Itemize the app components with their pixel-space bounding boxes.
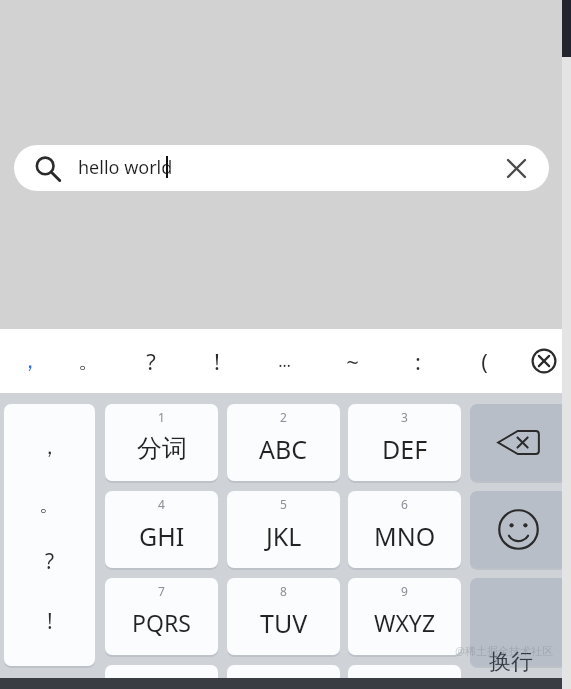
button[interactable]: ， (4, 404, 95, 666)
staticText: GHI (139, 519, 185, 553)
button[interactable]: 1 (105, 404, 218, 481)
staticText: ? (45, 547, 55, 576)
staticText: ! (214, 346, 220, 376)
staticText: 7 (158, 583, 165, 599)
staticText: ( (481, 346, 488, 376)
staticText: ? (146, 346, 156, 376)
staticText: 分词 (137, 433, 187, 464)
button[interactable]: 7 (105, 578, 218, 655)
button[interactable]: 8 (227, 578, 340, 655)
button[interactable]: Emoji (470, 491, 567, 568)
button[interactable]: ~ (319, 329, 385, 393)
button[interactable]: : (385, 329, 451, 393)
staticText: PQRS (132, 607, 191, 638)
staticText: 3 (401, 409, 408, 425)
button[interactable]: 3 (348, 404, 461, 481)
button[interactable]: Backspace (470, 404, 567, 481)
staticText: JKL (266, 519, 302, 553)
staticText: : (415, 346, 421, 376)
staticText: 2 (280, 409, 287, 425)
staticText: WXYZ (374, 607, 436, 638)
button[interactable]: Enter (470, 578, 567, 666)
staticText: hello world (78, 155, 173, 180)
button[interactable]: 6 (348, 491, 461, 568)
staticText: 6 (401, 496, 408, 512)
staticText: ， (39, 434, 60, 460)
button[interactable]: ， (0, 329, 59, 393)
staticText: 4 (158, 496, 165, 512)
button[interactable]: hello world (14, 145, 549, 191)
staticText: 5 (280, 496, 287, 512)
staticText: 换行 (489, 648, 533, 676)
staticText: 。 (39, 491, 60, 517)
button[interactable]: Clear text (499, 151, 533, 185)
button[interactable]: 。 (59, 329, 118, 393)
staticText: @稀土掘金技术社区 (455, 643, 553, 658)
staticText: 1 (158, 409, 165, 425)
button[interactable] (105, 665, 218, 689)
staticText: ~ (346, 346, 359, 376)
staticText: TUV (260, 606, 308, 640)
staticText: 。 (78, 347, 100, 375)
staticText: MNO (374, 519, 436, 553)
button[interactable] (348, 665, 461, 689)
staticText: … (278, 350, 291, 372)
staticText: 8 (280, 583, 287, 599)
button[interactable]: 5 (227, 491, 340, 568)
staticText: ， (19, 347, 41, 375)
staticText: ! (47, 607, 53, 636)
staticText: DEF (382, 432, 428, 466)
staticText: 9 (401, 583, 408, 599)
button[interactable]: … (250, 329, 319, 393)
button[interactable]: 9 (348, 578, 461, 655)
button[interactable]: ( (451, 329, 517, 393)
button[interactable] (227, 665, 340, 689)
button[interactable]: ! (184, 329, 250, 393)
button[interactable]: Close symbols (517, 329, 571, 393)
button[interactable]: ? (118, 329, 184, 393)
button[interactable]: 4 (105, 491, 218, 568)
staticText: ABC (259, 432, 308, 466)
button[interactable]: 2 (227, 404, 340, 481)
